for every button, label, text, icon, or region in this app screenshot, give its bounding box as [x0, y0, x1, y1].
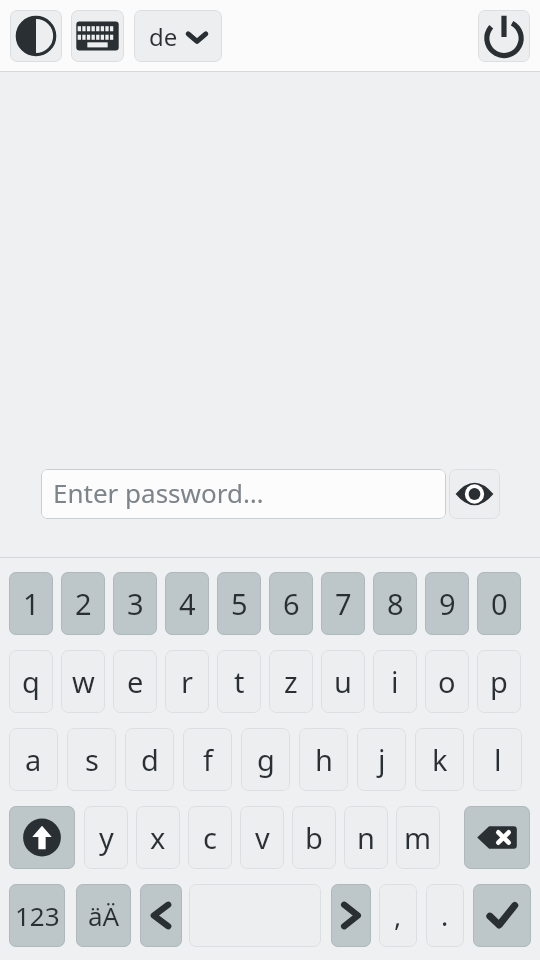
button[interactable]: 1: [9, 572, 53, 635]
button[interactable]: p: [477, 650, 521, 713]
staticText: ,: [394, 897, 402, 934]
staticText: p: [490, 662, 508, 701]
staticText: h: [315, 740, 333, 779]
button[interactable]: l: [473, 728, 522, 791]
staticText: c: [203, 818, 217, 857]
staticText: Enter password…: [53, 475, 264, 510]
button[interactable]: g: [241, 728, 290, 791]
button[interactable]: a: [9, 728, 58, 791]
button[interactable]: High contrast: [10, 10, 62, 62]
button[interactable]: 3: [113, 572, 157, 635]
button[interactable]: k: [415, 728, 464, 791]
staticText: f: [203, 740, 213, 779]
button[interactable]: m: [396, 806, 440, 869]
staticText: b: [305, 818, 323, 857]
button[interactable]: f: [183, 728, 232, 791]
button[interactable]: h: [299, 728, 348, 791]
button[interactable]: z: [269, 650, 313, 713]
staticText: q: [22, 662, 40, 701]
button[interactable]: o: [425, 650, 469, 713]
staticText: n: [357, 818, 375, 857]
button[interactable]: j: [357, 728, 406, 791]
button[interactable]: 6: [269, 572, 313, 635]
staticText: a: [25, 740, 42, 779]
staticText: z: [284, 662, 298, 701]
staticText: 0: [491, 584, 508, 623]
button[interactable]: 5: [217, 572, 261, 635]
button[interactable]: Enter: [473, 884, 531, 947]
staticText: k: [432, 740, 448, 779]
button[interactable]: 2: [61, 572, 105, 635]
button[interactable]: d: [125, 728, 174, 791]
staticText: y: [99, 818, 114, 857]
button[interactable]: de: [134, 10, 222, 62]
button[interactable]: c: [188, 806, 232, 869]
staticText: u: [334, 662, 352, 701]
button[interactable]: Previous: [140, 884, 182, 947]
button[interactable]: Power: [478, 10, 530, 62]
staticText: r: [181, 662, 193, 701]
button[interactable]: 0: [477, 572, 521, 635]
button[interactable]: n: [344, 806, 388, 869]
button[interactable]: Shift: [9, 806, 75, 869]
staticText: w: [72, 662, 95, 701]
button[interactable]: 7: [321, 572, 365, 635]
staticText: 3: [127, 584, 144, 623]
staticText: s: [85, 740, 99, 779]
staticText: m: [404, 818, 432, 857]
staticText: v: [255, 818, 270, 857]
staticText: 1: [23, 584, 40, 623]
button[interactable]: x: [136, 806, 180, 869]
button[interactable]: 8: [373, 572, 417, 635]
staticText: de: [149, 20, 178, 53]
button[interactable]: Space: [189, 884, 321, 947]
button[interactable]: 123: [9, 884, 65, 947]
staticText: l: [494, 740, 502, 779]
staticText: 123: [15, 898, 60, 933]
button[interactable]: u: [321, 650, 365, 713]
button[interactable]: Show password: [449, 469, 500, 519]
staticText: g: [257, 740, 275, 779]
button[interactable]: Enter password…: [41, 469, 446, 519]
staticText: .: [441, 897, 449, 934]
staticText: 7: [335, 584, 352, 623]
button[interactable]: .: [426, 884, 464, 947]
button[interactable]: e: [113, 650, 157, 713]
staticText: 8: [387, 584, 404, 623]
button[interactable]: q: [9, 650, 53, 713]
button[interactable]: i: [373, 650, 417, 713]
button[interactable]: 9: [425, 572, 469, 635]
button[interactable]: t: [217, 650, 261, 713]
staticText: o: [438, 662, 456, 701]
staticText: 5: [231, 584, 248, 623]
staticText: äÄ: [88, 898, 120, 933]
button[interactable]: r: [165, 650, 209, 713]
button[interactable]: v: [240, 806, 284, 869]
staticText: t: [234, 662, 245, 701]
button[interactable]: Backspace: [464, 806, 530, 869]
staticText: 9: [439, 584, 456, 623]
button[interactable]: äÄ: [76, 884, 131, 947]
button[interactable]: Keyboard layout: [71, 10, 124, 62]
button[interactable]: ,: [379, 884, 417, 947]
staticText: 2: [75, 584, 92, 623]
button[interactable]: 4: [165, 572, 209, 635]
button[interactable]: s: [67, 728, 116, 791]
staticText: d: [141, 740, 159, 779]
button[interactable]: w: [61, 650, 105, 713]
button[interactable]: Next: [331, 884, 371, 947]
staticText: x: [150, 818, 166, 857]
staticText: 4: [179, 584, 196, 623]
staticText: e: [127, 662, 144, 701]
button[interactable]: b: [292, 806, 336, 869]
staticText: j: [378, 740, 386, 779]
staticText: i: [391, 662, 399, 701]
button[interactable]: y: [84, 806, 128, 869]
staticText: 6: [283, 584, 300, 623]
